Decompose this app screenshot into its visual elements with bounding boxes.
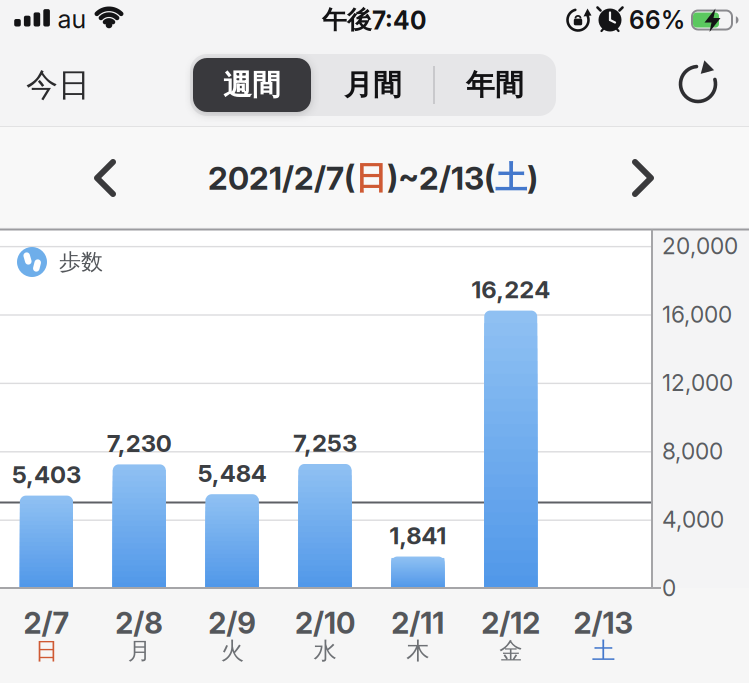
staticText: 土 [495,158,527,198]
button[interactable]: 今日 [13,55,103,115]
staticText: 5,484 [198,459,267,488]
button[interactable]: 月間 [318,58,428,112]
button[interactable]: 前の週 [82,153,128,203]
staticText: 66% [629,5,685,35]
staticText: 火 [221,636,244,666]
staticText: 20,000 [662,232,738,260]
staticText: 2/10 [295,605,355,641]
staticText: 2/8 [115,605,163,641]
staticText: 今日 [26,65,90,105]
button[interactable]: 更新 [672,58,724,110]
staticText: 週間 [223,67,281,103]
staticText: 金 [499,636,522,666]
staticText: 2/9 [208,605,256,641]
staticText: 2/12 [481,605,540,641]
button[interactable]: 年間 [440,58,550,112]
staticText: )~2/13( [387,159,495,197]
staticText: 7,253 [293,428,357,457]
staticText: 2021/2/7( [208,159,355,197]
staticText: 5,403 [12,460,81,489]
button[interactable]: 次の週 [620,153,666,203]
staticText: 午後7:40 [322,4,426,36]
staticText: 1,841 [389,521,446,550]
staticText: 月間 [344,67,402,103]
button[interactable]: 週間 [193,58,311,112]
staticText: 16,000 [662,301,732,328]
staticText: 0 [662,574,676,602]
staticText: 2/11 [391,605,444,641]
staticText: 2/13 [574,605,634,641]
staticText: 水 [313,636,336,666]
staticText: 16,224 [471,275,550,304]
staticText: 木 [406,636,429,666]
staticText: 歩数 [59,248,103,276]
staticText: au [57,4,86,34]
staticText: 日 [35,636,58,666]
staticText: 土 [592,636,615,666]
staticText: 日 [355,158,387,198]
staticText: ) [527,159,538,197]
staticText: 月 [128,636,151,666]
staticText: 4,000 [662,506,724,533]
staticText: 2/7 [23,605,69,641]
staticText: 年間 [466,67,524,103]
staticText: 8,000 [662,437,723,465]
staticText: 7,230 [107,429,172,458]
staticText: 12,000 [662,369,733,396]
